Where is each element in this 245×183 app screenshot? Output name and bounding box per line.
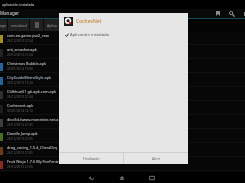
button[interactable]: drag_racing_1.5.4_ChestOrq [0,143,245,157]
button[interactable]: Fruit Ninja 1.7.6 (By FireFenix76).apk [0,157,245,171]
staticText: Aplicación instalada [70,32,109,38]
staticText: Aplica [47,23,57,28]
staticText: com.ea.game.pvz2_row [7,33,49,38]
staticText: Fruit Ninja 1.7.6 (By FireFenix76).apk [7,159,72,164]
button[interactable]: Abrir [124,153,188,164]
staticText: Cochesnet.apk [7,103,34,108]
staticText: 26/12/2013 21:54 [7,53,33,57]
staticText: Finalizado [83,156,100,161]
button[interactable]: Doodle Jump.apk [0,129,245,143]
staticText: Cldhhun51 gti-apk.com.apk [7,89,57,94]
staticText: aplicación instalada [2,2,35,7]
staticText: Christmas Bubble.apk [7,61,47,66]
button[interactable]: ant_smasher.apk [0,45,245,59]
staticText: Abrir [152,156,161,161]
button[interactable]: Back [83,172,99,183]
staticText: 03/01/2014 14:10 [7,109,33,113]
button[interactable]: CityGuideMetroStyle.apk [0,73,245,87]
staticText: age [0,23,7,28]
button[interactable]: Recents [144,172,160,183]
staticText: ant_smasher.apk [7,47,37,52]
staticText: 26/12/2013 21:05 [7,123,33,127]
button[interactable]: More options [240,9,245,18]
staticText: 26/12/2013 21:05 [7,165,33,169]
staticText: Doodle Jump.apk [7,131,38,136]
staticText: dice3d-twww.monetine.net.a [7,117,59,122]
staticText: CityGuideMetroStyle.apk [7,75,52,80]
staticText: 26/12/2013 21:05 [7,151,33,155]
staticText: drag_racing_1.5.4_ChestOrq [7,145,57,150]
button[interactable]: Bookmarks [211,9,224,18]
button[interactable]: Search [225,9,238,18]
staticText: 26/12/2013 21:05 [7,137,33,141]
button[interactable]: Finalizado [59,153,123,164]
button[interactable]: Cldhhun51 gti-apk.com.apk [0,87,245,101]
staticText: 26/12/2013 21:04 [7,95,33,99]
staticText: 30/12/2013 13:24 [7,81,33,85]
button[interactable]: Home [114,172,130,183]
button[interactable]: dice3d-twww.monetine.net.a [0,115,245,129]
staticText: 26/12/2013 21:54 [7,39,33,43]
staticText: Manager [0,10,20,16]
staticText: 02/01/2014 19:00 [7,67,33,71]
staticText: CochesNet [76,18,102,25]
staticText: emulated [11,23,27,28]
button[interactable]: com.ea.game.pvz2_row [0,31,245,45]
button[interactable]: Christmas Bubble.apk [0,59,245,73]
button[interactable]: Cochesnet.apk [0,101,245,115]
